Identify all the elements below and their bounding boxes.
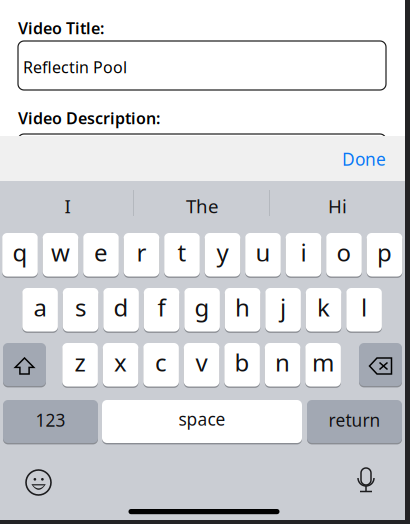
button[interactable]: e (83, 233, 119, 278)
button[interactable]: p (367, 233, 402, 278)
staticText: Done (342, 147, 386, 170)
button[interactable]: j (265, 288, 301, 333)
staticText: Video Title: (18, 17, 104, 39)
button[interactable]: space (102, 400, 302, 445)
staticText: y (216, 236, 228, 268)
button[interactable]: o (326, 233, 362, 278)
staticText: u (255, 236, 270, 268)
button[interactable]: k (306, 288, 341, 333)
staticText: d (114, 291, 129, 323)
button[interactable]: l (346, 288, 382, 333)
staticText: z (75, 346, 86, 378)
button[interactable]: Done (296, 145, 386, 173)
button[interactable]: Shift (3, 343, 46, 388)
staticText: Reflectin Pool (23, 56, 127, 78)
button[interactable]: s (63, 288, 98, 333)
staticText: j (280, 291, 286, 323)
button[interactable]: r (124, 233, 159, 278)
staticText: x (114, 346, 127, 378)
staticText: h (235, 291, 250, 323)
staticText: return (328, 408, 380, 431)
button[interactable]: I (0, 194, 135, 218)
button[interactable]: h (225, 288, 260, 333)
button[interactable]: x (103, 343, 138, 388)
staticText: a (34, 291, 47, 323)
staticText: i (300, 236, 306, 268)
button[interactable]: q (2, 233, 38, 278)
staticText: The (186, 194, 219, 218)
staticText: Hi (328, 194, 347, 218)
staticText: l (361, 291, 367, 323)
staticText: v (196, 346, 208, 378)
button[interactable]: t (164, 233, 200, 278)
button[interactable]: b (224, 343, 260, 388)
button[interactable]: Emoji keyboard (26, 470, 51, 495)
staticText: p (377, 236, 392, 268)
staticText: n (275, 346, 290, 378)
button[interactable]: n (265, 343, 300, 388)
staticText: o (336, 236, 351, 268)
staticText: f (158, 291, 166, 323)
staticText: m (312, 346, 334, 378)
button[interactable]: Delete (359, 343, 402, 388)
staticText: k (317, 291, 330, 323)
button[interactable]: Dictation (352, 467, 380, 497)
staticText: space (178, 407, 225, 430)
staticText: Video Description: (18, 107, 160, 129)
button[interactable]: v (184, 343, 219, 388)
staticText: g (195, 291, 210, 323)
button[interactable] (3, 400, 98, 445)
staticText: b (235, 346, 250, 378)
staticText: w (51, 236, 70, 268)
staticText: c (155, 346, 167, 378)
staticText: t (177, 236, 186, 268)
staticText: s (75, 291, 86, 323)
button[interactable]: y (205, 233, 240, 278)
staticText: r (136, 236, 146, 268)
staticText: I (64, 194, 70, 218)
button[interactable]: f (144, 288, 179, 333)
button[interactable]: The (135, 194, 270, 218)
staticText: q (12, 236, 27, 268)
button[interactable]: i (286, 233, 321, 278)
staticText: 123 (35, 408, 65, 431)
button[interactable]: a (22, 288, 58, 333)
button[interactable]: Hi (270, 194, 405, 218)
button[interactable]: m (305, 343, 341, 388)
button[interactable]: z (62, 343, 98, 388)
button[interactable]: c (143, 343, 179, 388)
button[interactable]: g (184, 288, 220, 333)
button[interactable]: u (245, 233, 281, 278)
button[interactable] (307, 400, 402, 445)
button[interactable]: w (43, 233, 78, 278)
button[interactable]: d (103, 288, 139, 333)
staticText: e (94, 236, 108, 268)
